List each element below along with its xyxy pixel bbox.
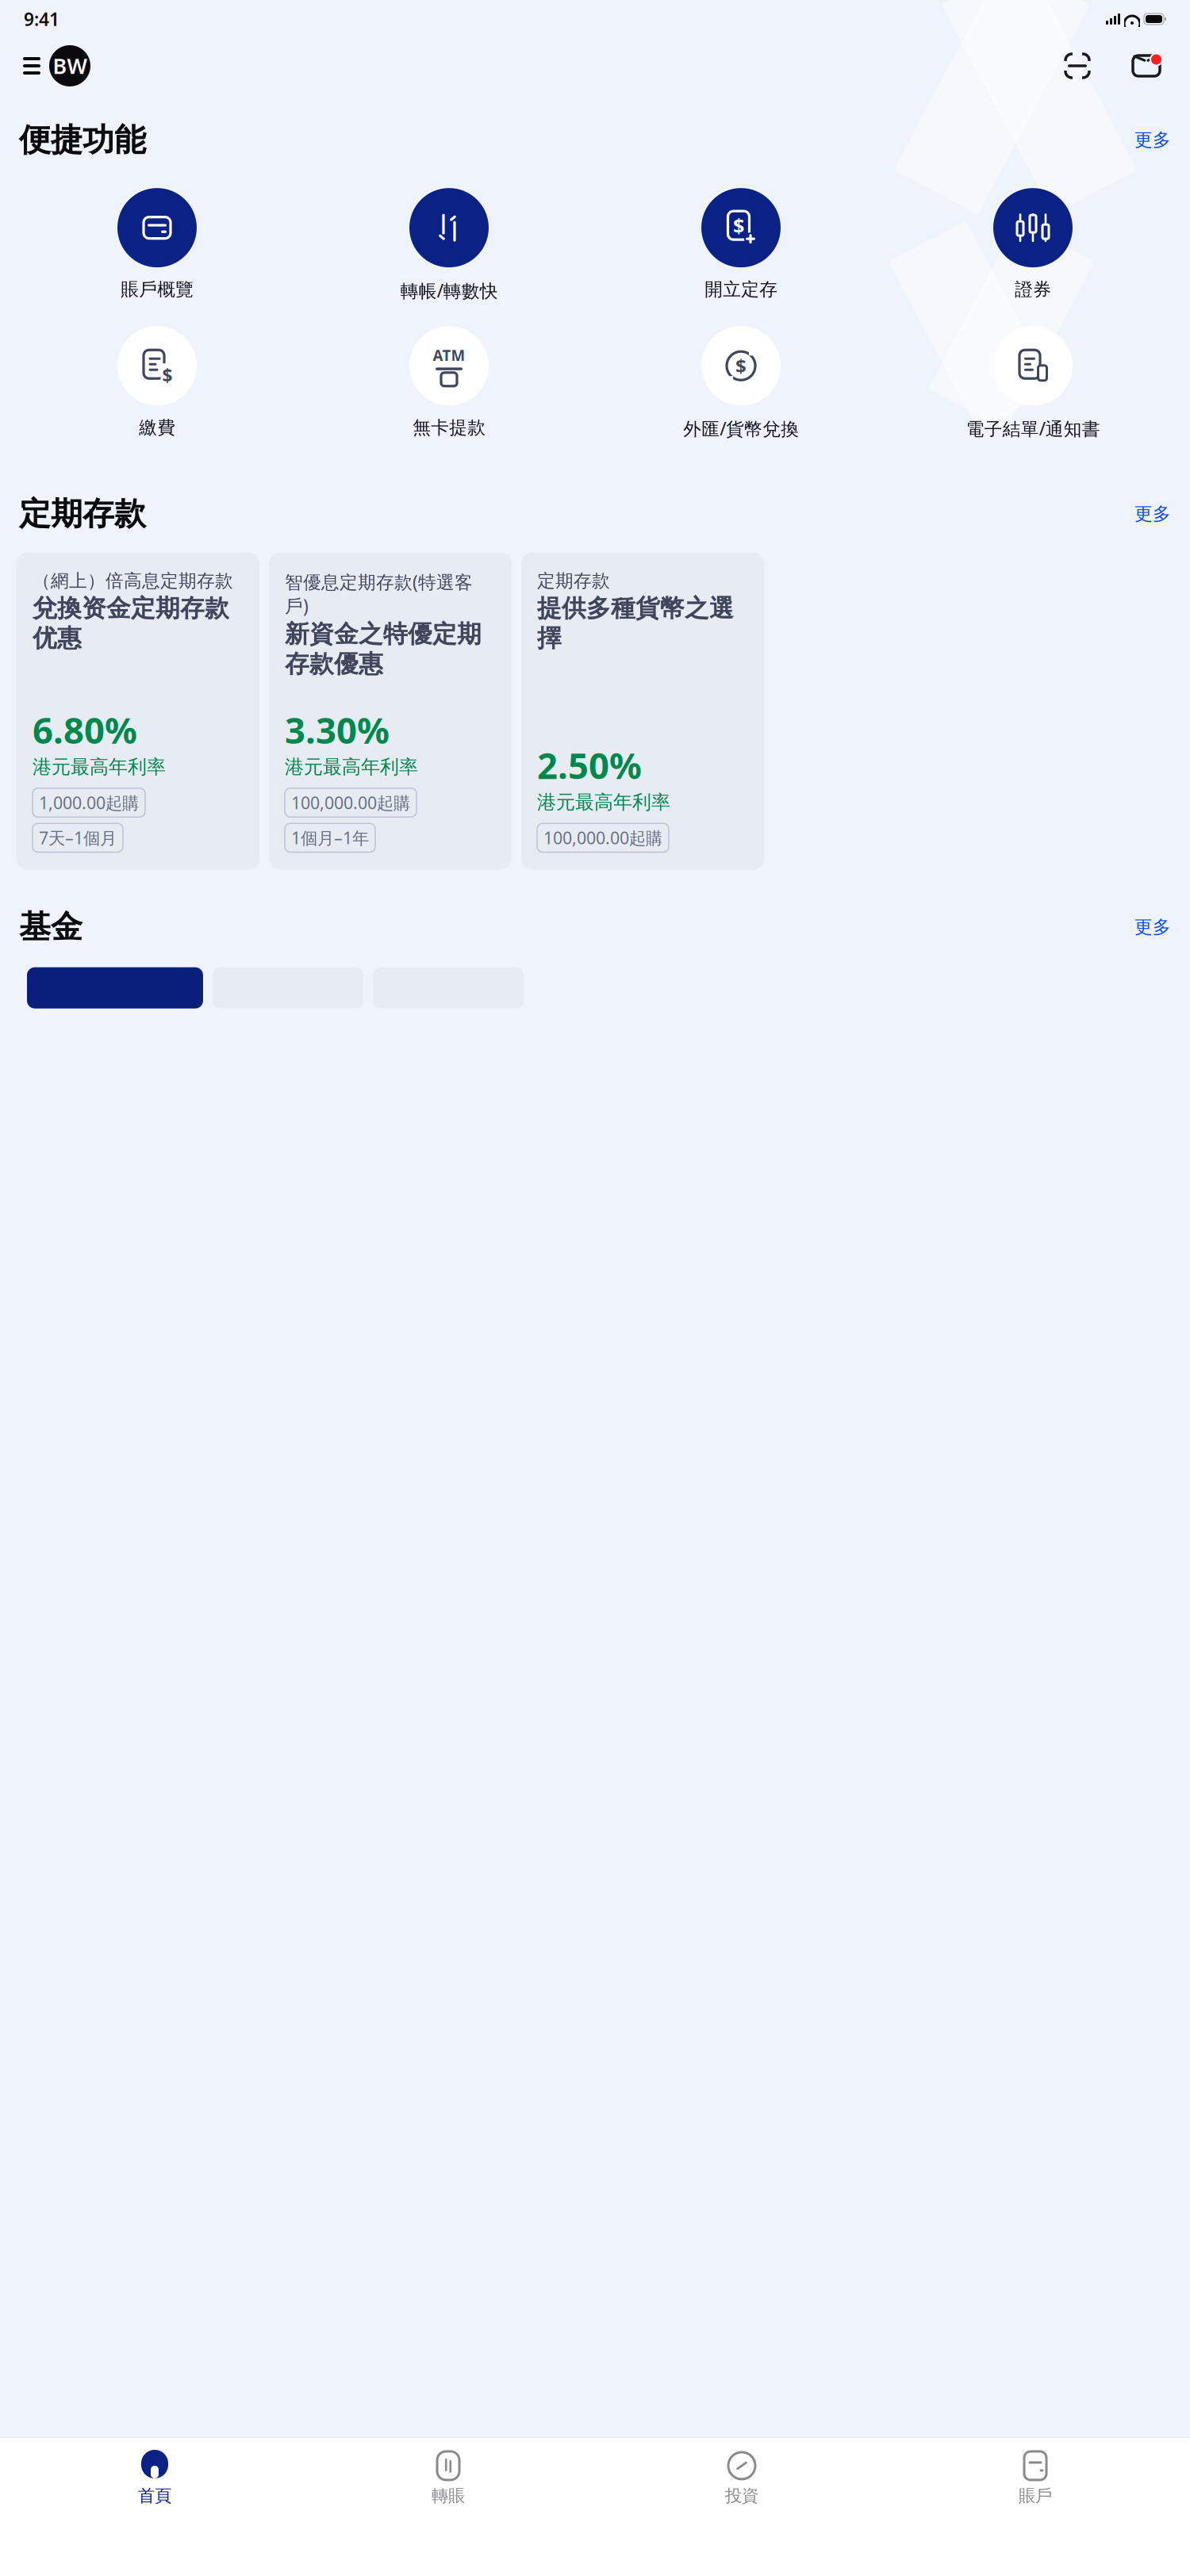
- button[interactable]: Profile BW: [49, 45, 90, 86]
- staticText: 6.80%: [33, 706, 137, 754]
- button[interactable]: $: [595, 323, 887, 444]
- staticText: 兌換资金定期存款优惠: [33, 593, 229, 653]
- button[interactable]: 智優息定期存款(特選客戶): [269, 552, 512, 870]
- staticText: 1,000.00起購: [39, 791, 139, 814]
- button[interactable]: 賬戶概覽: [11, 185, 303, 304]
- button[interactable]: 電子結單/通知書: [887, 323, 1179, 444]
- staticText: 更多: [1134, 916, 1171, 938]
- button[interactable]: 轉帳/轉數快: [303, 185, 595, 306]
- staticText: 基金: [19, 908, 83, 947]
- staticText: 無卡提款: [413, 417, 486, 439]
- staticText: 100,000.00起購: [543, 826, 662, 849]
- staticText: 首頁: [138, 2486, 171, 2506]
- button[interactable]: Messages: [1125, 47, 1168, 85]
- button[interactable]: Menu: [22, 49, 49, 82]
- staticText: $: [733, 212, 744, 239]
- staticText: 1個月–1年: [291, 826, 369, 849]
- staticText: $: [162, 363, 173, 387]
- staticText: 100,000.00起購: [291, 791, 410, 814]
- button[interactable]: 賬戶: [889, 2443, 1182, 2506]
- staticText: 外匯/貨幣兌換: [683, 417, 799, 440]
- button[interactable]: 證券: [887, 185, 1179, 304]
- staticText: 轉帳/轉數快: [400, 278, 498, 302]
- button[interactable]: 轉賬: [301, 2443, 595, 2506]
- staticText: 3.30%: [285, 706, 390, 754]
- button[interactable]: Scan: [1058, 47, 1096, 85]
- staticText: 證券: [1015, 278, 1051, 301]
- staticText: 港元最高年利率: [537, 790, 670, 814]
- staticText: 提供多種貨幣之選擇: [537, 593, 734, 653]
- button[interactable]: （網上）倍高息定期存款: [17, 552, 259, 870]
- staticText: 7天–1個月: [39, 826, 117, 849]
- staticText: 開立定存: [704, 278, 777, 301]
- staticText: 港元最高年利率: [33, 755, 166, 779]
- staticText: BW: [53, 52, 87, 80]
- button[interactable]: 更多: [1122, 498, 1171, 530]
- staticText: 定期存款: [19, 494, 146, 533]
- staticText: 便捷功能: [19, 121, 146, 159]
- staticText: （網上）倍高息定期存款: [33, 570, 233, 592]
- button[interactable]: $: [11, 323, 303, 442]
- staticText: 投資: [725, 2486, 758, 2506]
- staticText: 更多: [1134, 129, 1171, 151]
- staticText: 繳費: [139, 417, 175, 439]
- button[interactable]: 投資: [595, 2443, 889, 2506]
- staticText: 港元最高年利率: [285, 755, 418, 779]
- staticText: 新資金之特優定期存款優惠: [285, 619, 482, 679]
- staticText: 2.50%: [537, 741, 642, 789]
- staticText: ATM: [433, 345, 465, 365]
- staticText: 定期存款: [537, 570, 610, 592]
- staticText: $: [735, 353, 747, 378]
- staticText: 更多: [1134, 503, 1171, 525]
- staticText: 智優息定期存款(特選客戶): [285, 570, 473, 618]
- button[interactable]: 更多: [1122, 911, 1171, 943]
- staticText: 轉賬: [432, 2486, 465, 2506]
- staticText: 賬戶概覽: [121, 278, 194, 301]
- button[interactable]: 首頁: [8, 2443, 301, 2506]
- button[interactable]: ATM: [303, 323, 595, 442]
- button[interactable]: $: [595, 185, 887, 304]
- button[interactable]: 定期存款: [521, 552, 764, 870]
- staticText: 電子結單/通知書: [966, 417, 1100, 440]
- staticText: 賬戶: [1019, 2486, 1052, 2506]
- button[interactable]: 更多: [1122, 124, 1171, 156]
- staticText: 9:41: [24, 7, 59, 31]
